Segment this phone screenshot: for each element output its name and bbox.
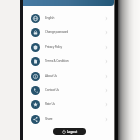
staticText: Rate Us	[45, 102, 105, 106]
staticText: Share	[45, 117, 105, 121]
staticText: Terms & Condition	[45, 59, 105, 63]
staticText: Change password	[45, 30, 105, 34]
staticText: Contact Us	[45, 88, 105, 92]
button[interactable]: English	[23, 11, 114, 25]
button[interactable]: About Us	[23, 69, 114, 83]
staticText: Privacy Policy	[45, 45, 105, 49]
staticText: English	[45, 16, 105, 20]
button[interactable]: Change password	[23, 25, 114, 39]
staticText: About Us	[45, 74, 105, 78]
staticText: Logout	[67, 130, 78, 134]
button[interactable]: Share	[23, 112, 114, 126]
button[interactable]: Privacy Policy	[23, 40, 114, 54]
button[interactable]: Logout	[53, 128, 86, 135]
button[interactable]: Contact Us	[23, 83, 114, 97]
button[interactable]: Rate Us	[23, 97, 114, 111]
button[interactable]: Terms & Condition	[23, 54, 114, 68]
